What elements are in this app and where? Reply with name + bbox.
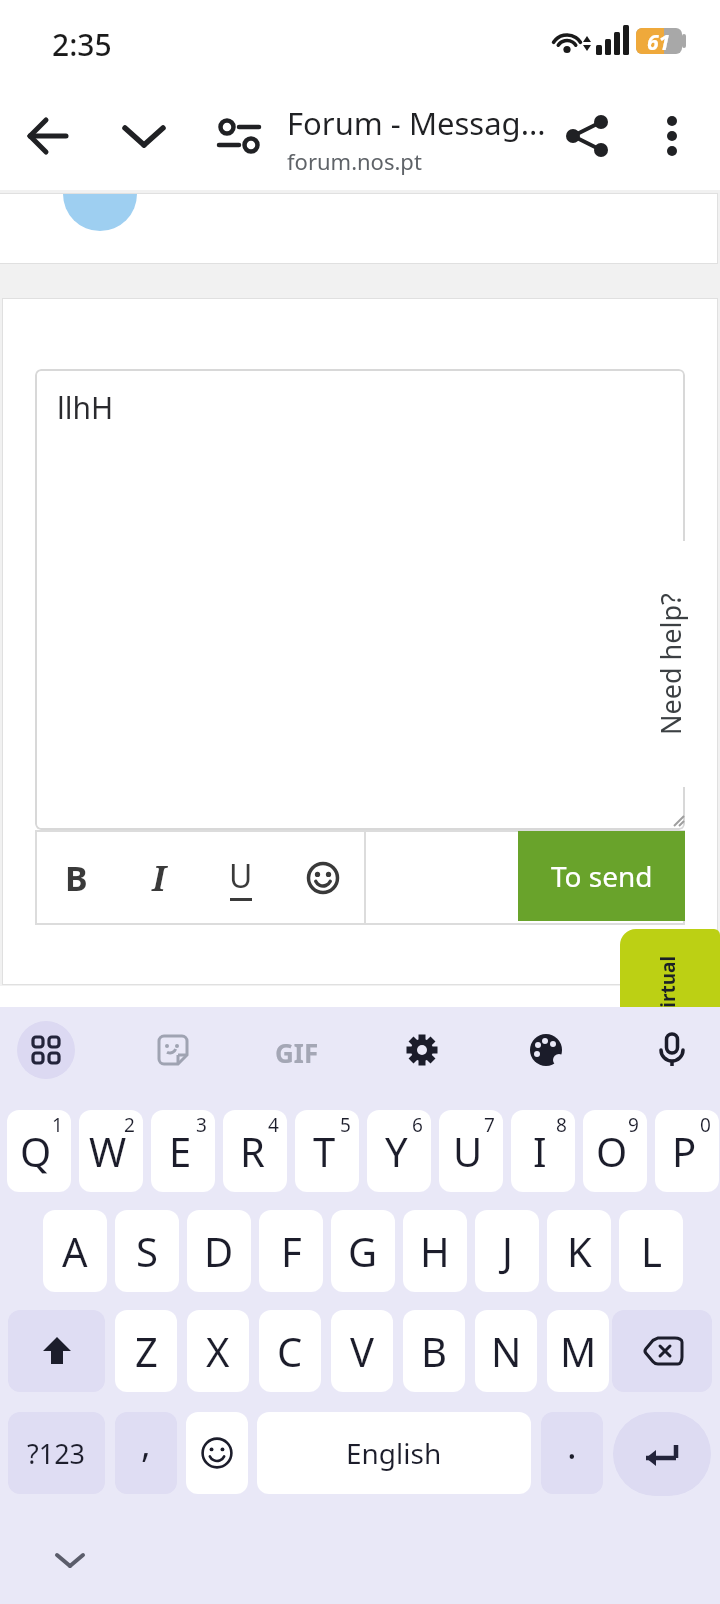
button[interactable]: H [403,1210,467,1292]
button[interactable] [8,1310,105,1392]
button[interactable] [186,1412,248,1494]
button[interactable]: D [187,1210,251,1292]
button[interactable]: W [79,1110,143,1192]
button[interactable]: Virtual [620,929,720,1007]
staticText: Need help? [652,593,689,735]
button[interactable]: I [511,1110,575,1192]
staticText: 6 [412,1112,423,1138]
button[interactable]: Z [115,1310,177,1392]
staticText: U [453,1124,483,1178]
staticText: G [348,1224,378,1278]
staticText: U [229,854,253,898]
staticText: R [240,1124,265,1178]
button[interactable] [613,1412,711,1496]
staticText: N [491,1324,522,1378]
staticText: V [350,1324,374,1378]
button[interactable] [648,112,696,160]
button[interactable]: Y [367,1110,431,1192]
staticText: X [206,1324,230,1378]
staticText: Z [135,1324,158,1378]
button[interactable] [215,112,263,160]
button[interactable] [647,1025,697,1075]
staticText: 1 [52,1112,63,1138]
button[interactable]: U [200,830,282,925]
button[interactable]: llhH [35,369,685,830]
staticText: , [141,1419,151,1468]
staticText: I [533,1124,547,1178]
button[interactable]: O [583,1110,647,1192]
staticText: 0 [700,1112,711,1138]
staticText: GIF [275,1035,319,1070]
staticText: 4 [268,1112,279,1138]
button[interactable]: N [475,1310,537,1392]
button[interactable]: S [115,1210,179,1292]
button[interactable]: C [259,1310,321,1392]
staticText: 2:35 [52,24,112,65]
button[interactable]: A [43,1210,107,1292]
button[interactable]: Q [7,1110,71,1192]
button[interactable]: P [655,1110,719,1192]
button[interactable] [50,1545,90,1575]
button[interactable]: U [439,1110,503,1192]
button[interactable]: R [223,1110,287,1192]
staticText: B [421,1324,447,1378]
button[interactable] [521,1025,571,1075]
staticText: forum.nos.pt [287,146,422,176]
staticText: To send [551,857,653,895]
staticText: J [502,1224,513,1278]
staticText: Forum - Messag... [287,102,546,144]
staticText: 61 [647,28,671,54]
button[interactable] [17,1021,75,1079]
staticText: . [567,1421,577,1470]
button[interactable]: M [547,1310,609,1392]
staticText: Virtual [655,955,681,1007]
staticText: llhH [57,387,114,428]
button[interactable]: B [403,1310,465,1392]
staticText: Q [20,1124,52,1178]
staticText: I [152,855,166,901]
button[interactable] [612,1310,712,1392]
button[interactable]: L [619,1210,683,1292]
staticText: D [204,1224,234,1278]
button[interactable] [282,830,364,925]
staticText: 7 [484,1112,495,1138]
staticText: 5 [340,1112,351,1138]
staticText: K [567,1224,592,1278]
button[interactable]: J [475,1210,539,1292]
staticText: M [560,1324,597,1378]
button[interactable] [120,112,168,160]
staticText: S [136,1224,158,1278]
staticText: P [672,1124,697,1178]
button[interactable] [563,112,611,160]
button[interactable]: GIF [270,1025,324,1079]
staticText: C [277,1324,303,1378]
button[interactable] [148,1025,198,1075]
button[interactable]: T [295,1110,359,1192]
button[interactable]: , [115,1412,177,1494]
button[interactable]: I [118,830,200,925]
staticText: 2 [124,1112,135,1138]
button[interactable]: K [547,1210,611,1292]
button[interactable]: To send [518,831,685,921]
staticText: W [89,1124,127,1178]
staticText: O [596,1124,628,1178]
staticText: ?123 [27,1435,86,1472]
button[interactable] [24,112,72,160]
button[interactable]: ?123 [8,1412,105,1494]
staticText: L [641,1224,662,1278]
staticText: A [62,1224,88,1278]
button[interactable]: X [187,1310,249,1392]
button[interactable]: G [331,1210,395,1292]
button[interactable]: . [541,1412,603,1494]
button[interactable]: E [151,1110,215,1192]
button[interactable]: English [257,1412,531,1494]
staticText: E [169,1124,192,1178]
button[interactable]: B [35,830,118,925]
button[interactable]: F [259,1210,323,1292]
button[interactable]: V [331,1310,393,1392]
button[interactable]: Need help? [630,541,710,787]
staticText: 3 [196,1112,207,1138]
staticText: F [281,1224,302,1278]
button[interactable] [397,1025,447,1075]
staticText: B [65,855,88,901]
